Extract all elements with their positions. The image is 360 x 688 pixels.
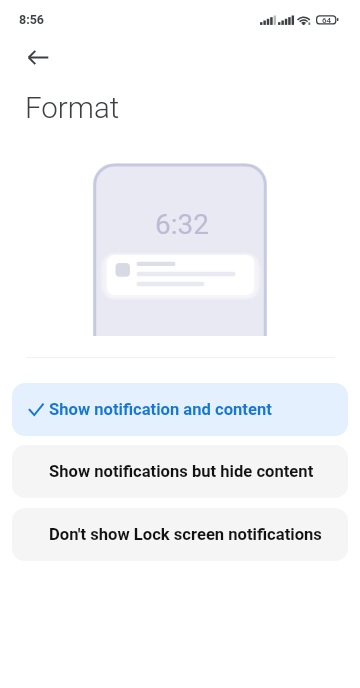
staticText: Don't show Lock screen notifications	[49, 525, 322, 544]
staticText: Format	[25, 91, 120, 126]
button[interactable]: Show notification and content	[12, 383, 348, 436]
staticText: Show notification and content	[49, 400, 272, 419]
button[interactable]: Don't show Lock screen notifications	[12, 508, 348, 561]
staticText: 8:56	[19, 12, 45, 27]
staticText: 64	[322, 16, 332, 25]
staticText: Show notifications but hide content	[49, 462, 314, 481]
button[interactable]: Show notifications but hide content	[12, 445, 348, 498]
staticText: 6:32	[155, 208, 209, 241]
button[interactable]: Back	[16, 35, 61, 80]
